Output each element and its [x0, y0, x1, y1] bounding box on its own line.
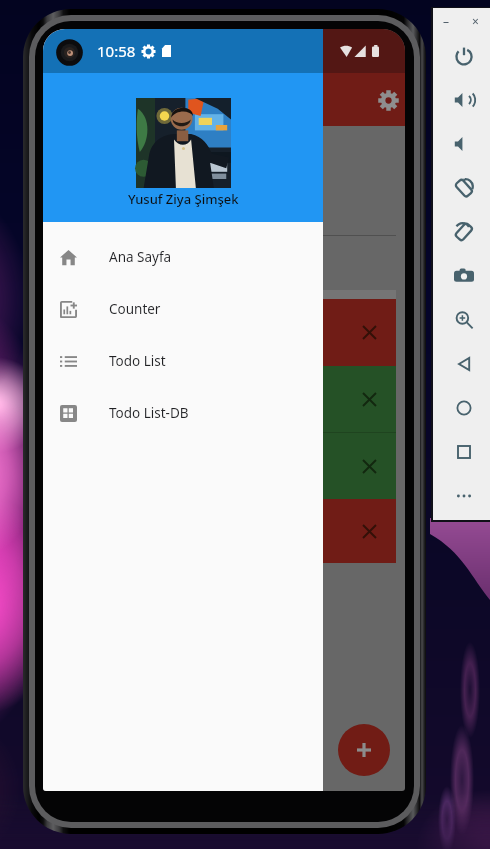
other: Delete: [363, 326, 376, 339]
other: Delete: [363, 460, 376, 473]
button[interactable]: Rotate left: [438, 166, 490, 210]
button[interactable]: Back: [438, 342, 490, 386]
button[interactable]: Volume down: [438, 122, 490, 166]
staticText: 10:58: [97, 41, 136, 61]
button[interactable]: Ana Sayfa: [43, 231, 323, 283]
button[interactable]: Delete: [52, 299, 396, 366]
other: Delete: [363, 393, 376, 406]
button[interactable]: Rotate right: [438, 210, 490, 254]
button[interactable]: Overview: [438, 430, 490, 474]
staticText: Todo List: [109, 352, 166, 370]
staticText: Todo List-DB: [109, 404, 189, 422]
button[interactable]: Todo List-DB: [43, 387, 323, 439]
button[interactable]: Zoom: [438, 298, 490, 342]
button[interactable]: More: [438, 474, 490, 518]
button[interactable]: Add: [338, 724, 390, 776]
staticText: Counter: [109, 300, 161, 318]
button[interactable]: Power: [438, 34, 490, 78]
button[interactable]: Settings: [376, 88, 400, 112]
button[interactable]: Screenshot: [438, 254, 490, 298]
staticText: –: [443, 13, 450, 29]
button[interactable]: Delete: [52, 433, 396, 499]
button[interactable]: Todo List: [43, 335, 323, 387]
other: Delete: [363, 525, 376, 538]
staticText: Yusuf Ziya Şimşek: [128, 190, 239, 208]
button[interactable]: Home: [438, 386, 490, 430]
button[interactable]: Volume up: [438, 78, 490, 122]
button[interactable]: Counter: [43, 283, 323, 335]
button[interactable]: Delete: [52, 366, 396, 432]
staticText: Ana Sayfa: [109, 248, 172, 266]
staticText: ×: [472, 13, 479, 29]
button[interactable]: Delete: [52, 499, 396, 563]
